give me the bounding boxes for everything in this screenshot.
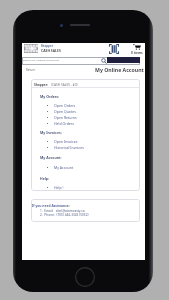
button[interactable]: Shopper logo [24,44,38,53]
staticText: If you need Assistance: [32,203,70,207]
staticText: My Orders: [40,94,60,99]
button[interactable]: Open Orders [47,103,76,108]
button[interactable]: Historical Invoices [47,145,84,150]
staticText: Shopper: [34,83,49,87]
button[interactable]: Open Returns [47,115,77,120]
staticText: Historical Invoices [54,145,84,150]
staticText: 2. Phone: (705) 444-3343 (5052) [40,213,89,217]
button[interactable]: Cart, 0 items [127,44,146,55]
button[interactable]: My Account [47,165,74,170]
staticText: Return [26,68,36,72]
staticText: Open Returns [54,115,77,120]
staticText: Held Orders [54,121,74,126]
staticText: Shopper [41,44,53,48]
button[interactable]: Return [26,68,36,72]
staticText: Open Quotes [54,109,76,114]
button[interactable]: Help ! [47,185,64,190]
staticText: Open Orders [54,103,76,108]
other: Search [101,58,107,64]
staticText: Open Invoices [54,139,78,144]
staticText: (CASH SALES - #0) [51,83,78,87]
staticText: Search our catalog of products [23,58,59,61]
staticText: My Invoices: [40,130,62,135]
staticText: My Online Account [95,66,144,73]
staticText: 0 items [131,51,143,55]
button[interactable]: Open Invoices [47,139,78,144]
button[interactable]: Scan barcode [109,44,119,54]
staticText: CASH SALES [41,48,61,53]
staticText: Help: [40,176,50,181]
staticText: Help ! [54,185,64,190]
button[interactable]: Held Orders [47,121,74,126]
staticText: My Account [54,165,74,170]
button[interactable]: Open Quotes [47,109,76,114]
staticText: 1. Email: sbnl@atomcasty.ca [40,209,85,213]
staticText: My Account: [40,155,62,160]
